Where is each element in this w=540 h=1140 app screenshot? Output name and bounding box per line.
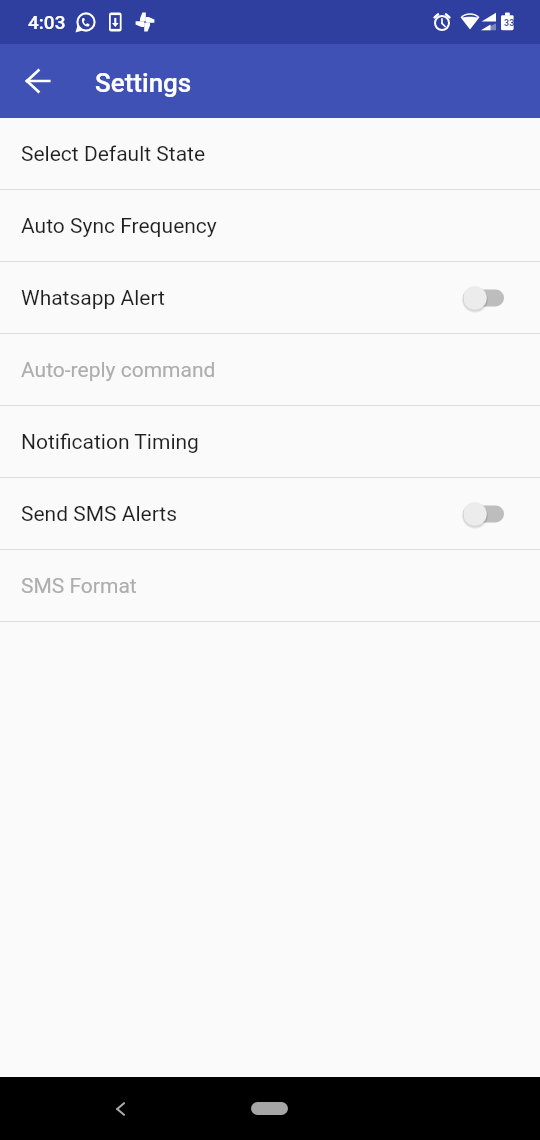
button[interactable]: Auto Sync Frequency	[0, 190, 540, 262]
staticText: Auto Sync Frequency	[21, 214, 217, 239]
button[interactable]: Select Default State	[0, 118, 540, 190]
button[interactable]: Toggle Whatsapp Alert	[457, 276, 511, 320]
staticText: 33	[504, 18, 515, 29]
staticText: Send SMS Alerts	[21, 502, 178, 527]
staticText: Settings	[95, 68, 192, 98]
button[interactable]: Back	[96, 1085, 144, 1133]
staticText: Notification Timing	[21, 430, 199, 455]
staticText: Select Default State	[21, 142, 206, 167]
staticText: 4:03	[28, 11, 66, 33]
button[interactable]: Auto-reply command	[0, 334, 540, 406]
button[interactable]: Whatsapp Alert	[0, 262, 540, 334]
staticText: Whatsapp Alert	[21, 286, 165, 311]
button[interactable]: Send SMS Alerts	[0, 478, 540, 550]
button[interactable]: Navigate up	[11, 53, 67, 109]
button[interactable]: SMS Format	[0, 550, 540, 622]
button[interactable]: Toggle Send SMS Alerts	[457, 492, 511, 536]
staticText: Auto-reply command	[21, 358, 216, 383]
staticText: SMS Format	[21, 574, 137, 599]
button[interactable]: Notification Timing	[0, 406, 540, 478]
button[interactable]: Home	[251, 1102, 288, 1115]
